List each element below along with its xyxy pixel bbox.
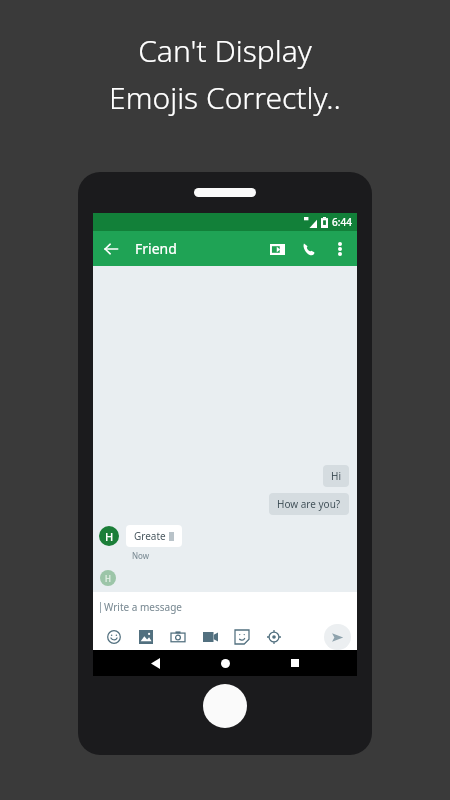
button[interactable]: Emoji [98, 626, 130, 648]
staticText: H [105, 529, 114, 544]
staticText: Can't Display [138, 30, 312, 71]
button[interactable]: How are you? [277, 497, 341, 511]
button[interactable]: Send [324, 624, 351, 650]
staticText: Emojis Correctly.. [109, 77, 341, 118]
button[interactable]: Sticker [226, 626, 258, 648]
button[interactable]: Call [293, 233, 325, 265]
staticText: Now [132, 550, 150, 561]
button[interactable]: Home [203, 684, 247, 728]
button[interactable]: More options [325, 234, 355, 264]
button[interactable]: Gallery [130, 626, 162, 648]
button[interactable]: Hi [331, 469, 341, 483]
button[interactable]: Video call [261, 233, 293, 265]
button[interactable]: Location [258, 626, 290, 648]
staticText: Hi [331, 469, 341, 483]
button[interactable]: Camera [162, 626, 194, 648]
staticText: Friend [135, 239, 177, 258]
button[interactable]: Recents [284, 652, 306, 674]
button[interactable]: Greate [134, 529, 174, 543]
staticText: 6:44 [332, 215, 352, 229]
staticText: How are you? [277, 497, 341, 511]
button[interactable]: Back [93, 231, 128, 266]
button[interactable]: Back [144, 652, 166, 674]
staticText: Write a message [104, 600, 182, 614]
button[interactable]: Home [214, 652, 236, 674]
staticText: H [105, 573, 111, 584]
button[interactable]: Video [194, 626, 226, 648]
staticText: Greate [134, 529, 169, 543]
